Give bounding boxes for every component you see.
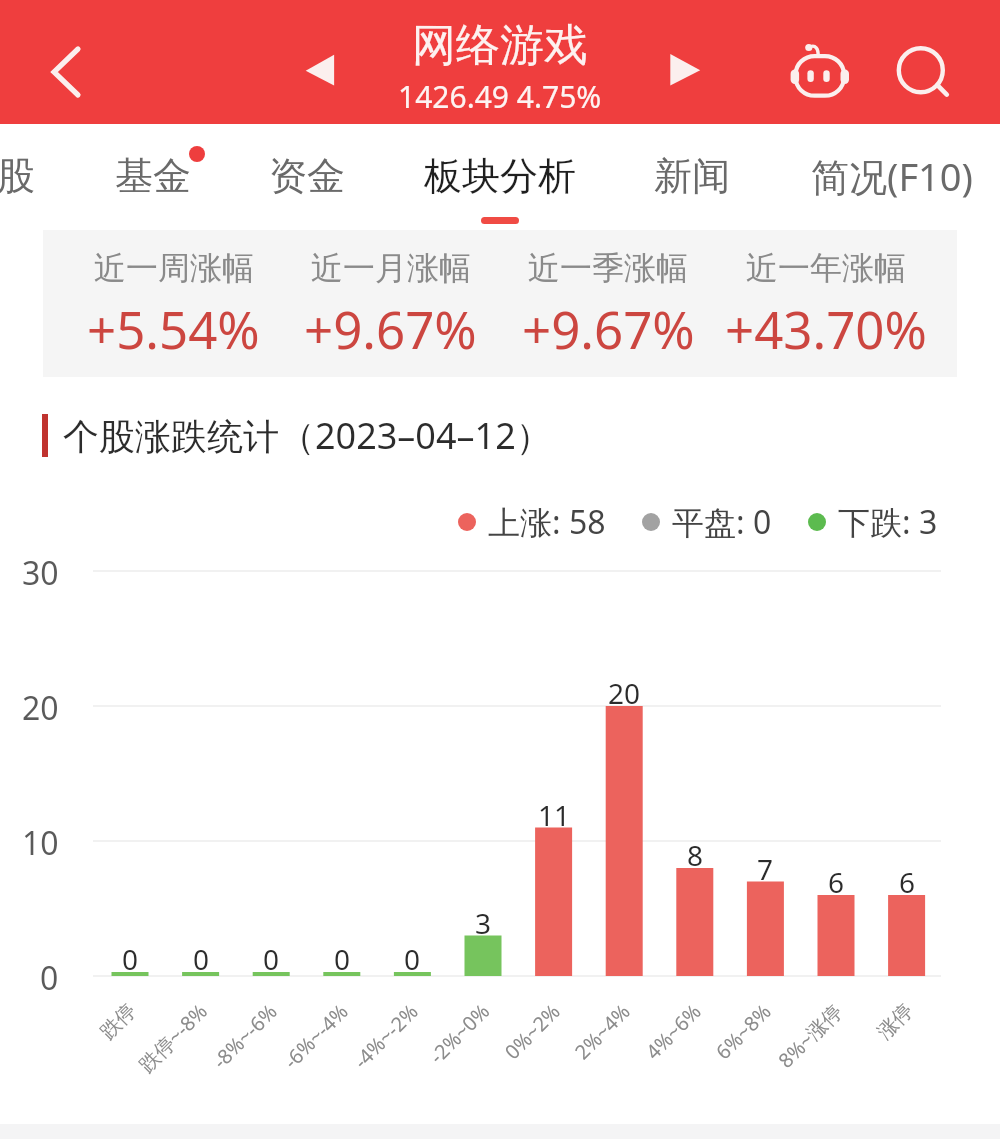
button[interactable]: 近一年涨幅 xyxy=(717,230,935,377)
button[interactable]: Assistant xyxy=(782,30,858,106)
staticText: 10 xyxy=(22,821,59,863)
staticText: 近一月涨幅 xyxy=(311,248,471,288)
staticText: 1426.49 4.75% xyxy=(398,76,602,117)
staticText: -6%~-4% xyxy=(277,998,354,1074)
staticText: 8 xyxy=(687,836,704,874)
staticText: 近一年涨幅 xyxy=(746,248,906,288)
staticText: 8%~涨停 xyxy=(772,998,848,1073)
staticText: 0 xyxy=(193,940,210,978)
staticText: -4%~-2% xyxy=(347,998,424,1074)
staticText: +5.54% xyxy=(87,294,260,363)
staticText: 0 xyxy=(334,940,351,978)
button[interactable]: 新闻 xyxy=(592,124,792,230)
button[interactable]: 上涨: 58 xyxy=(458,500,606,544)
staticText: 下跌: 3 xyxy=(838,500,938,544)
button[interactable]: Next sector xyxy=(652,40,714,102)
staticText: 6 xyxy=(828,863,845,901)
button[interactable]: 近一季涨幅 xyxy=(499,230,717,377)
button[interactable]: Back xyxy=(24,28,112,116)
staticText: 7 xyxy=(757,850,774,888)
staticText: 平盘: 0 xyxy=(672,500,772,544)
staticText: 个股涨跌统计（2023–04–12） xyxy=(63,411,552,460)
staticText: +43.70% xyxy=(725,294,927,363)
staticText: 资金 xyxy=(269,152,345,200)
staticText: 2%~4% xyxy=(569,998,636,1065)
staticText: 简况(F10) xyxy=(811,150,973,202)
button[interactable]: 资金 xyxy=(207,124,407,230)
staticText: -2%~0% xyxy=(423,998,495,1069)
button[interactable]: 板块分析 xyxy=(400,124,600,230)
staticText: 近一季涨幅 xyxy=(528,248,688,288)
staticText: 上涨: 58 xyxy=(488,500,606,544)
button[interactable]: Search xyxy=(884,32,964,112)
staticText: 3 xyxy=(475,904,492,942)
staticText: 0 xyxy=(404,940,421,978)
button[interactable]: 基金 xyxy=(53,124,253,230)
staticText: 跌停 xyxy=(95,998,141,1044)
button[interactable]: Previous sector xyxy=(286,40,348,102)
button[interactable]: 个股 xyxy=(0,124,97,230)
staticText: 新闻 xyxy=(654,152,730,200)
staticText: 基金 xyxy=(115,152,191,200)
staticText: 4%~6% xyxy=(640,998,707,1065)
button[interactable]: 近一月涨幅 xyxy=(282,230,499,377)
staticText: 6%~8% xyxy=(710,998,777,1065)
staticText: 20 xyxy=(22,686,59,728)
staticText: 0 xyxy=(40,956,59,998)
staticText: 6 xyxy=(899,863,916,901)
staticText: 跌停~-8% xyxy=(133,998,213,1078)
button[interactable]: 近一周涨幅 xyxy=(65,230,282,377)
staticText: 20 xyxy=(608,674,641,712)
staticText: 0 xyxy=(122,940,139,978)
staticText: 涨停 xyxy=(872,998,918,1044)
staticText: +9.67% xyxy=(304,294,477,363)
staticText: 0 xyxy=(263,940,280,978)
staticText: -8%~-6% xyxy=(206,998,283,1074)
staticText: +9.67% xyxy=(522,294,695,363)
button[interactable]: 简况(F10) xyxy=(792,124,992,230)
staticText: 近一周涨幅 xyxy=(94,248,254,288)
button[interactable]: 平盘: 0 xyxy=(642,500,772,544)
staticText: 30 xyxy=(22,551,59,593)
staticText: 板块分析 xyxy=(424,152,576,200)
staticText: 个股 xyxy=(0,152,35,200)
button[interactable]: 下跌: 3 xyxy=(808,500,938,544)
staticText: 0%~2% xyxy=(499,998,566,1065)
staticText: 网络游戏 xyxy=(412,18,588,73)
staticText: 11 xyxy=(538,796,571,834)
